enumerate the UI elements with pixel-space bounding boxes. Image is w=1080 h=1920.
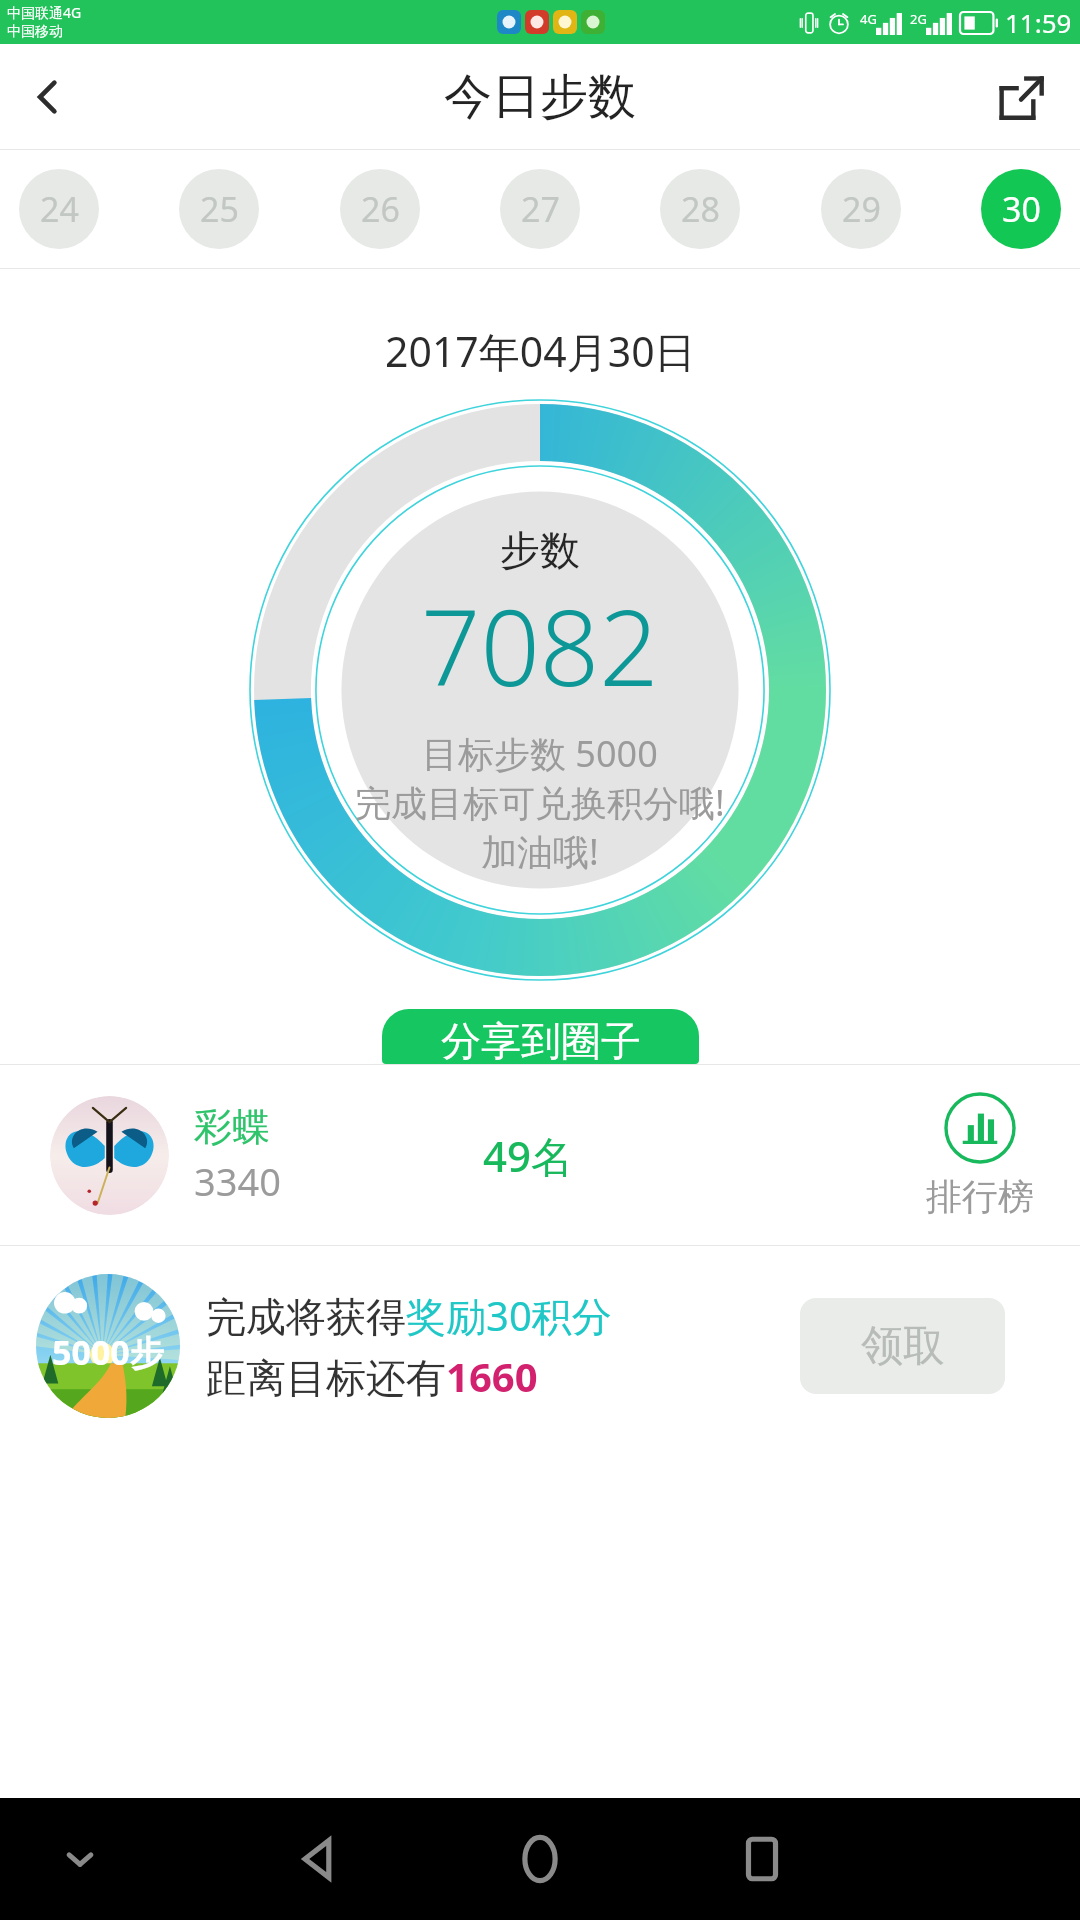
staticText: 24 xyxy=(40,186,79,232)
staticText: 加油哦! xyxy=(481,827,599,876)
staticText: 步数 xyxy=(500,525,580,575)
staticText: 3340 xyxy=(194,1155,281,1207)
button[interactable]: 24 xyxy=(19,169,99,249)
button[interactable]: 25 xyxy=(179,169,259,249)
button[interactable]: Back xyxy=(0,44,96,149)
button[interactable]: 26 xyxy=(340,169,420,249)
staticText: 5000步 xyxy=(52,1329,164,1375)
staticText: 完成目标可兑换积分哦! xyxy=(355,778,725,827)
staticText: 4G xyxy=(860,10,877,28)
staticText: 完成将获得奖励30积分 xyxy=(206,1288,612,1343)
button[interactable]: Recents xyxy=(707,1804,817,1914)
staticText: 中国移动 xyxy=(7,23,63,41)
button[interactable]: 彩蝶 xyxy=(0,1065,1080,1245)
button[interactable]: 排行榜 xyxy=(880,1065,1080,1245)
staticText: 目标步数 5000 xyxy=(422,729,658,778)
staticText: 7082 xyxy=(421,575,659,717)
staticText: 30 xyxy=(1002,186,1041,232)
button[interactable]: Share xyxy=(970,44,1080,149)
staticText: 49名 xyxy=(483,1127,574,1184)
staticText: 分享到圈子 xyxy=(441,1016,641,1064)
button[interactable]: 29 xyxy=(821,169,901,249)
staticText: 领取 xyxy=(861,1320,945,1373)
button[interactable]: 分享到圈子 xyxy=(382,1009,699,1064)
staticText: 28 xyxy=(681,186,720,232)
button[interactable]: Hide xyxy=(40,1819,120,1899)
staticText: 27 xyxy=(521,186,560,232)
staticText: 29 xyxy=(842,186,881,232)
staticText: 彩蝶 xyxy=(194,1103,270,1151)
staticText: 排行榜 xyxy=(926,1174,1034,1219)
staticText: 2017年04月30日 xyxy=(385,323,696,379)
button[interactable]: 27 xyxy=(500,169,580,249)
staticText: 距离目标还有1660 xyxy=(206,1349,538,1404)
staticText: 2G xyxy=(910,10,927,28)
button[interactable]: Home xyxy=(485,1804,595,1914)
staticText: 11:59 xyxy=(1005,5,1072,40)
button[interactable]: Back xyxy=(263,1804,373,1914)
button[interactable]: 领取 xyxy=(800,1298,1005,1394)
staticText: 中国联通4G xyxy=(7,3,82,22)
button[interactable]: 30 xyxy=(981,169,1061,249)
button[interactable]: 28 xyxy=(660,169,740,249)
staticText: 26 xyxy=(361,186,400,232)
staticText: 今日步数 xyxy=(444,67,636,127)
staticText: 25 xyxy=(200,186,239,232)
